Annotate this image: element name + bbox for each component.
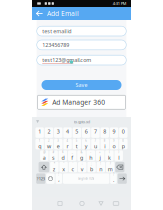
staticText: ? bbox=[113, 173, 114, 176]
staticText: 3 bbox=[57, 128, 60, 135]
button[interactable]: _ bbox=[68, 150, 76, 161]
staticText: 4 bbox=[66, 139, 68, 142]
staticText: 9 bbox=[112, 128, 115, 135]
staticText: m bbox=[108, 166, 113, 173]
button[interactable]: 2 bbox=[45, 139, 53, 149]
staticText: 4:31 PM bbox=[113, 1, 127, 6]
staticText: 6 bbox=[85, 139, 87, 142]
button[interactable]: 4 bbox=[63, 139, 72, 149]
staticText: x bbox=[62, 166, 65, 173]
button[interactable]: 2 bbox=[45, 127, 53, 138]
staticText: & bbox=[80, 150, 82, 154]
button[interactable]: Comma bbox=[55, 173, 62, 184]
staticText: b bbox=[90, 166, 93, 173]
button[interactable]: 4 bbox=[63, 127, 72, 138]
button[interactable]: ? bbox=[106, 162, 114, 172]
button[interactable]: # bbox=[49, 150, 58, 161]
staticText: Add Email bbox=[47, 9, 79, 18]
button[interactable]: 3 bbox=[54, 127, 62, 138]
staticText: 5 bbox=[75, 128, 78, 135]
button[interactable]: Backspace bbox=[115, 162, 124, 172]
staticText: q bbox=[38, 143, 41, 150]
staticText: * bbox=[54, 162, 55, 165]
staticText: 0 bbox=[122, 128, 125, 135]
staticText: r bbox=[66, 143, 68, 150]
button[interactable]: 8 bbox=[100, 139, 109, 149]
staticText: 5 bbox=[76, 139, 78, 142]
staticText: 1 bbox=[39, 139, 41, 142]
staticText: . bbox=[113, 176, 114, 183]
button[interactable]: Back bbox=[94, 197, 108, 210]
staticText: 0 bbox=[122, 139, 124, 142]
staticText: o bbox=[112, 143, 115, 150]
button[interactable]: & bbox=[77, 150, 86, 161]
button[interactable]: 0 bbox=[119, 127, 127, 138]
button[interactable]: 7 bbox=[91, 139, 100, 149]
button[interactable]: Shift bbox=[39, 162, 49, 172]
staticText: 7 bbox=[94, 139, 96, 142]
button[interactable]: 8 bbox=[100, 127, 109, 138]
staticText: 9 bbox=[113, 139, 115, 142]
button[interactable]: ; bbox=[87, 162, 96, 172]
staticText: : bbox=[82, 162, 83, 165]
button[interactable]: - bbox=[87, 150, 95, 161]
staticText: c bbox=[71, 166, 74, 173]
button[interactable]: ) bbox=[114, 150, 123, 161]
button[interactable]: @ bbox=[40, 150, 48, 161]
staticText: ; bbox=[91, 162, 92, 165]
button[interactable]: * bbox=[50, 162, 58, 172]
button[interactable]: ! bbox=[97, 162, 105, 172]
staticText: Ad Manager 360 bbox=[52, 98, 105, 107]
button[interactable]: Save bbox=[41, 80, 121, 90]
staticText: s bbox=[52, 154, 55, 161]
button[interactable]: Space bbox=[63, 173, 109, 184]
button[interactable]: 5 bbox=[73, 127, 81, 138]
staticText: e bbox=[57, 143, 60, 150]
button[interactable]: Hide keyboard bbox=[109, 197, 123, 210]
staticText: - bbox=[90, 150, 91, 154]
button[interactable]: ?123 bbox=[36, 173, 45, 184]
button[interactable]: 1 bbox=[35, 127, 44, 138]
staticText: 2 bbox=[48, 139, 50, 142]
staticText: 8 bbox=[104, 139, 106, 142]
staticText: # bbox=[53, 150, 55, 154]
staticText: 7 bbox=[94, 128, 97, 135]
staticText: ! bbox=[58, 173, 59, 176]
button[interactable]: 3 bbox=[54, 139, 62, 149]
staticText: h bbox=[89, 154, 92, 161]
button[interactable]: ' bbox=[69, 162, 77, 172]
button[interactable]: + bbox=[96, 150, 104, 161]
staticText: $ bbox=[62, 150, 64, 154]
staticText: i bbox=[104, 143, 105, 150]
button[interactable]: 9 bbox=[110, 139, 118, 149]
button[interactable]: $ bbox=[59, 150, 67, 161]
button[interactable]: 0 bbox=[119, 139, 127, 149]
staticText: p bbox=[122, 143, 125, 150]
staticText: j bbox=[100, 154, 101, 161]
staticText: 2 bbox=[47, 128, 50, 135]
button[interactable]: 6 bbox=[82, 127, 90, 138]
button[interactable]: : bbox=[78, 162, 86, 172]
staticText: _ bbox=[72, 150, 73, 154]
staticText: t bbox=[76, 143, 78, 150]
staticText: + bbox=[99, 150, 101, 154]
button[interactable]: ( bbox=[105, 150, 114, 161]
button[interactable]: Home bbox=[75, 197, 89, 210]
staticText: a bbox=[43, 154, 46, 161]
button[interactable]: 9 bbox=[110, 127, 118, 138]
button[interactable]: Back bbox=[32, 7, 47, 20]
staticText: Save bbox=[75, 81, 87, 89]
button[interactable]: Ad Manager 360 bbox=[38, 95, 125, 109]
button[interactable]: 7 bbox=[91, 127, 100, 138]
button[interactable]: 6 bbox=[82, 139, 90, 149]
button[interactable]: 1 bbox=[35, 139, 44, 149]
button[interactable]: Recent apps bbox=[53, 197, 67, 210]
button[interactable]: 5 bbox=[73, 139, 81, 149]
staticText: d bbox=[61, 154, 64, 161]
button[interactable]: Enter bbox=[118, 173, 127, 184]
staticText: English (US) bbox=[78, 177, 94, 180]
button[interactable]: " bbox=[59, 162, 68, 172]
button[interactable]: Emoji bbox=[46, 173, 55, 184]
staticText: f bbox=[71, 154, 73, 161]
button[interactable]: Period bbox=[110, 173, 117, 184]
